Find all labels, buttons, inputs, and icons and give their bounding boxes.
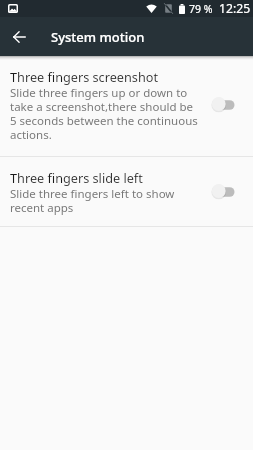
staticText: Slide three fingers left to show recent …	[10, 186, 198, 215]
staticText: System motion	[51, 28, 145, 46]
button[interactable]: Three fingers screenshot	[0, 56, 253, 156]
staticText: Three fingers screenshot	[10, 68, 159, 85]
button[interactable]: Navigate up	[7, 24, 32, 49]
other: Screenshot captured	[8, 4, 18, 13]
staticText: Slide three fingers up or down to take a…	[10, 85, 198, 142]
button[interactable]: Three fingers slide left	[0, 157, 253, 226]
button[interactable]: Toggle off	[201, 180, 237, 202]
staticText: Three fingers slide left	[10, 169, 143, 186]
staticText: 12:25	[219, 0, 251, 17]
button[interactable]: Toggle off	[201, 93, 237, 115]
staticText: 79 %	[189, 2, 213, 16]
